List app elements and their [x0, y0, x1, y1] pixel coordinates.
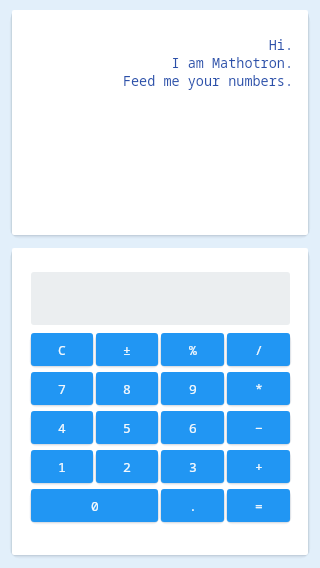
staticText: 6 — [189, 419, 197, 437]
button[interactable]: C — [31, 333, 93, 366]
button[interactable]: 7 — [31, 372, 93, 405]
staticText: % — [189, 341, 197, 359]
staticText: C — [58, 341, 66, 359]
staticText: 5 — [123, 419, 131, 437]
button[interactable]: . — [161, 489, 224, 522]
staticText: 9 — [189, 380, 197, 398]
staticText: Hi. — [27, 36, 293, 54]
staticText: − — [255, 419, 263, 437]
button[interactable]: 3 — [161, 450, 224, 483]
staticText: 3 — [189, 458, 197, 476]
button[interactable]: 1 — [31, 450, 93, 483]
button[interactable]: / — [227, 333, 290, 366]
staticText: / — [255, 341, 263, 359]
button[interactable]: 2 — [96, 450, 158, 483]
staticText: 7 — [58, 380, 66, 398]
staticText: 1 — [58, 458, 66, 476]
button[interactable]: % — [161, 333, 224, 366]
button[interactable]: ± — [96, 333, 158, 366]
button[interactable]: + — [227, 450, 290, 483]
button[interactable]: 6 — [161, 411, 224, 444]
staticText: 4 — [58, 419, 66, 437]
staticText: + — [255, 458, 263, 476]
button[interactable]: = — [227, 489, 290, 522]
button[interactable]: 9 — [161, 372, 224, 405]
button[interactable]: 0 — [31, 489, 158, 522]
staticText: I am Mathotron. — [27, 54, 293, 72]
button[interactable]: 8 — [96, 372, 158, 405]
staticText: 8 — [123, 380, 131, 398]
staticText: 0 — [91, 497, 99, 515]
button[interactable]: 5 — [96, 411, 158, 444]
staticText: . — [189, 497, 197, 515]
button[interactable]: − — [227, 411, 290, 444]
staticText: 2 — [123, 458, 131, 476]
button[interactable]: 4 — [31, 411, 93, 444]
staticText: = — [255, 497, 263, 515]
staticText: Feed me your numbers. — [27, 72, 293, 90]
staticText: ± — [123, 341, 131, 359]
button[interactable]: * — [227, 372, 290, 405]
staticText: * — [255, 380, 263, 398]
